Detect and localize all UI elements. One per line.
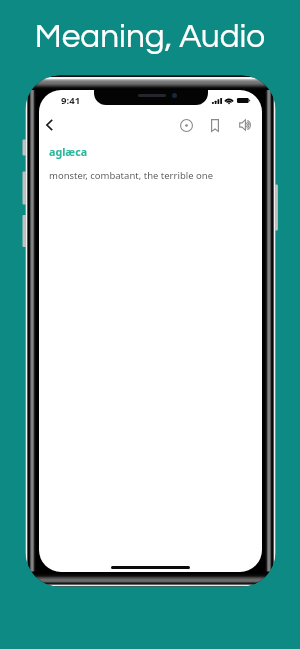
staticText: Meaning, Audio — [0, 20, 300, 54]
staticText: 9:41 — [61, 94, 81, 107]
staticText: monster, combatant, the terrible one — [49, 169, 214, 182]
button[interactable]: Play audio — [234, 114, 256, 136]
button[interactable]: Back — [39, 113, 60, 136]
staticText: aglæca — [49, 145, 88, 160]
button[interactable]: Dictionary options — [175, 114, 197, 136]
button[interactable]: Bookmark — [204, 114, 226, 136]
